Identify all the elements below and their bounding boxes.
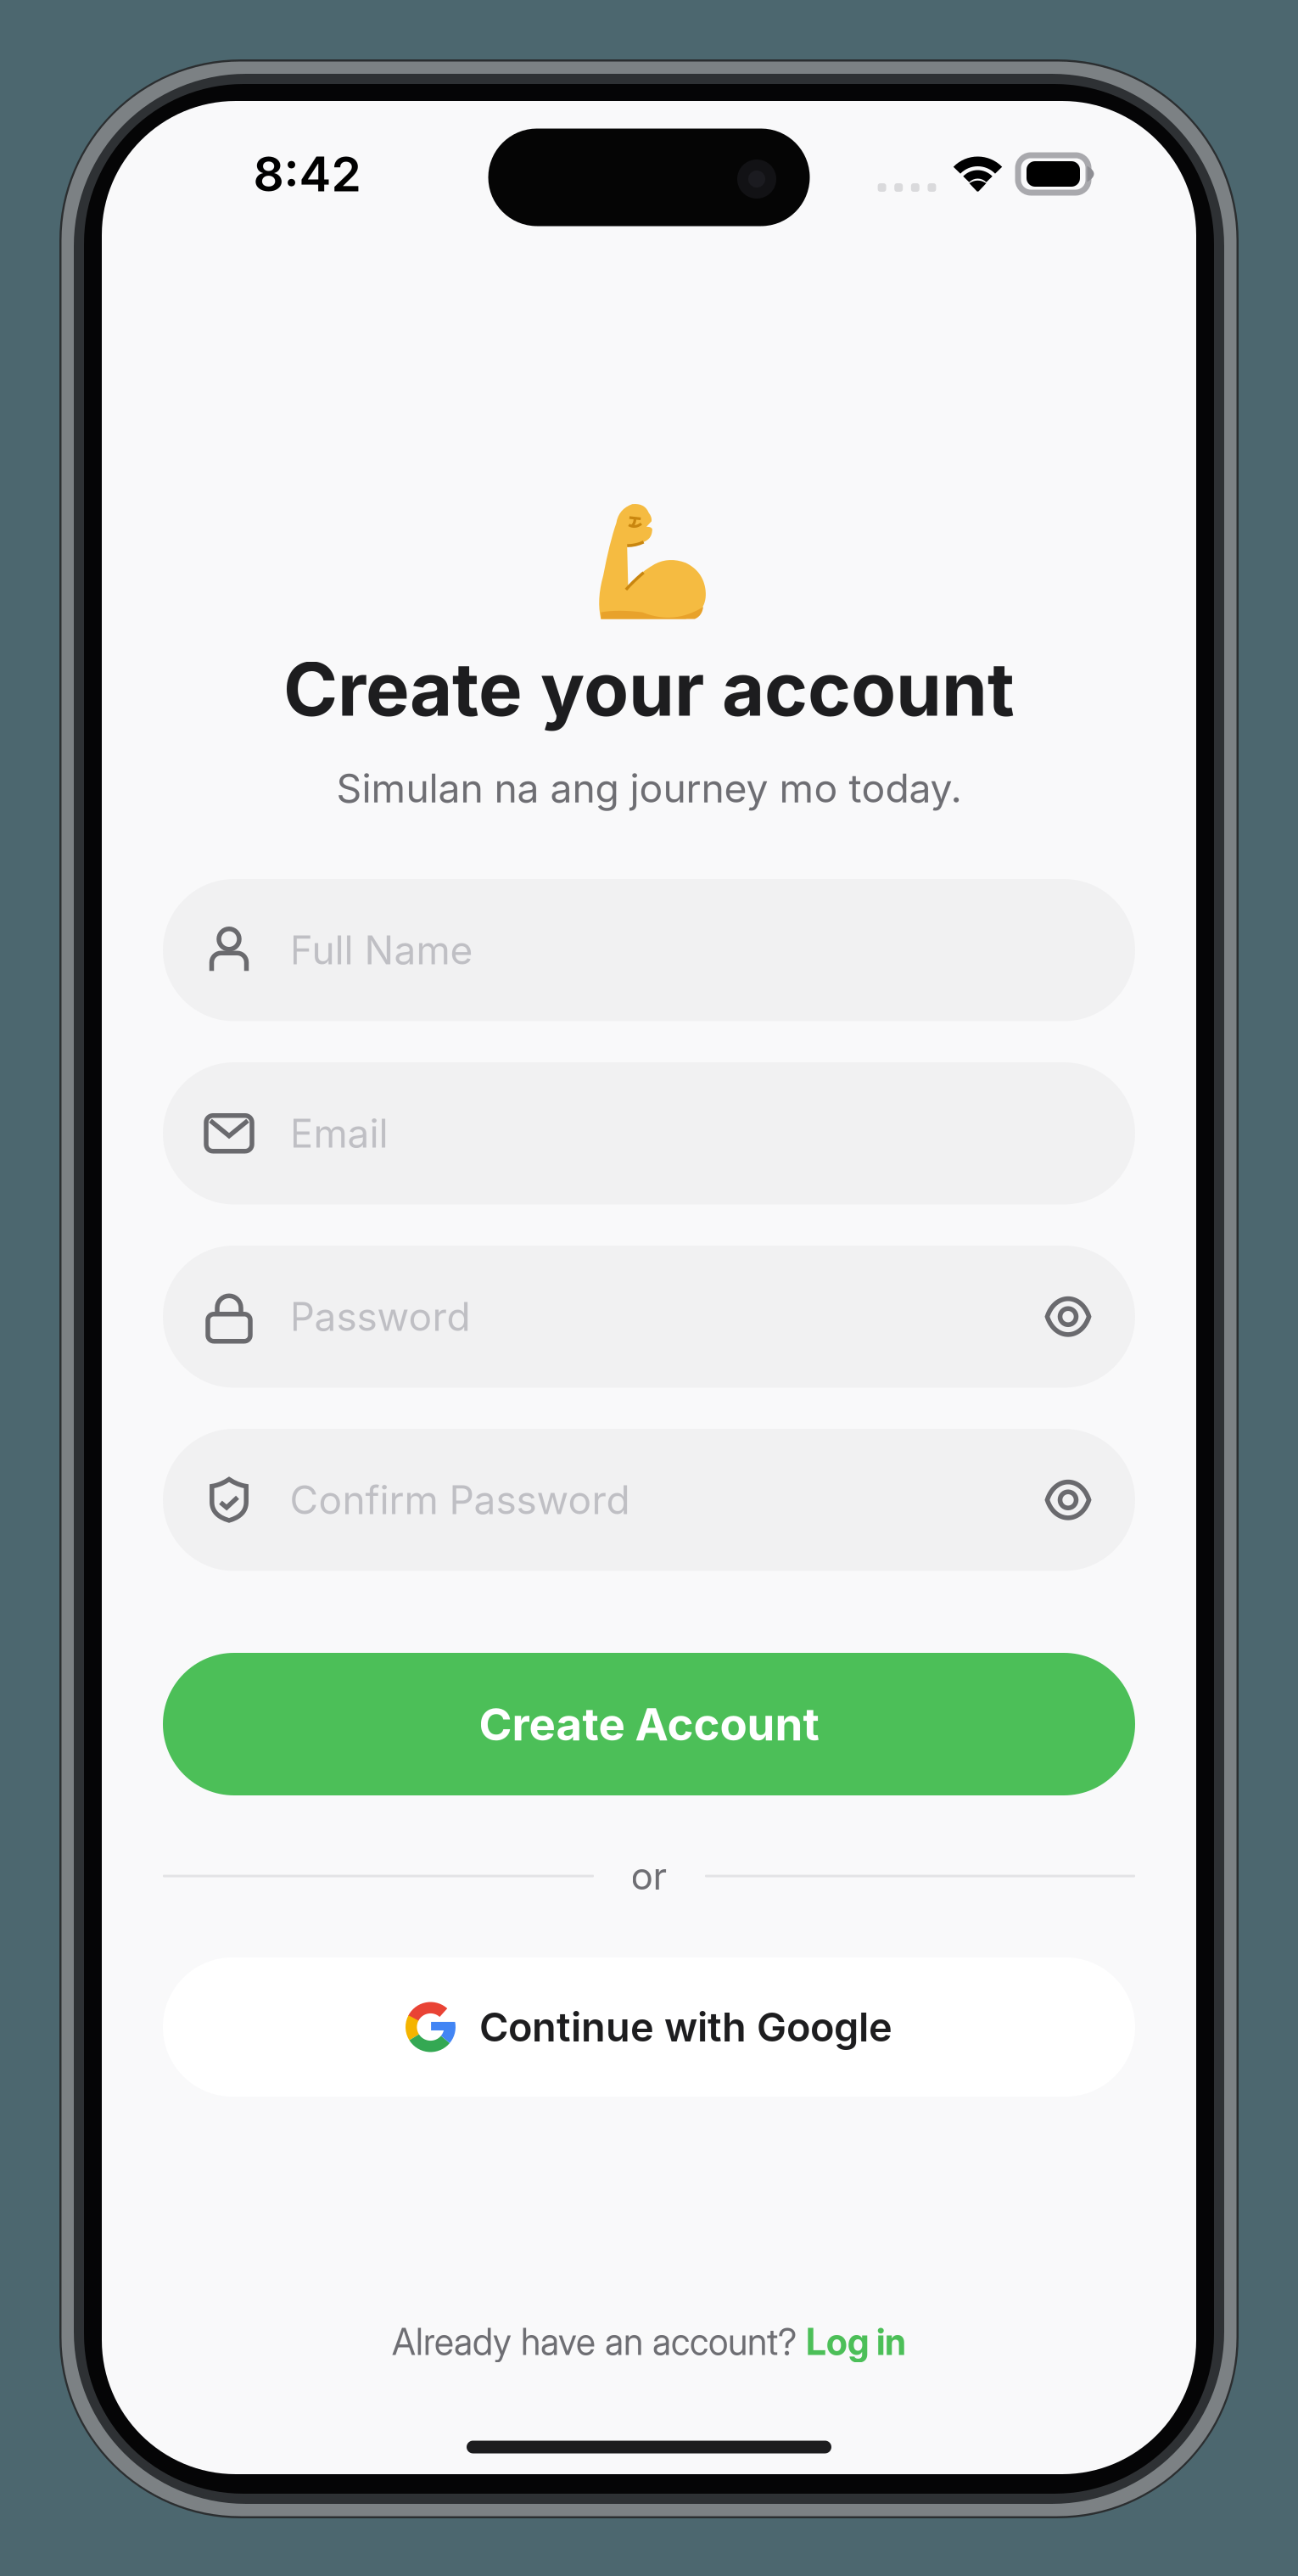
staticText: Create Account	[479, 1697, 819, 1751]
staticText: Already have an account?	[392, 2320, 806, 2364]
button[interactable]: Confirm Password	[163, 1429, 1135, 1571]
staticText: Full Name	[290, 926, 473, 974]
button[interactable]: Continue with Google	[163, 1957, 1135, 2097]
staticText: 8:42	[253, 145, 361, 203]
staticText: Confirm Password	[290, 1476, 630, 1524]
staticText: Create your account	[283, 645, 1015, 734]
staticText: Password	[290, 1293, 470, 1340]
button[interactable]: Create Account	[163, 1653, 1135, 1795]
staticText: or	[631, 1853, 667, 1899]
button[interactable]: Full Name	[163, 879, 1135, 1021]
button[interactable]: Already have an account?	[392, 2320, 906, 2364]
staticText: Continue with Google	[479, 2003, 892, 2051]
button[interactable]: Password	[163, 1246, 1135, 1388]
staticText: Simulan na ang journey mo today.	[336, 764, 962, 812]
staticText: Log in	[806, 2320, 906, 2364]
staticText: Email	[290, 1110, 388, 1157]
button[interactable]: Email	[163, 1062, 1135, 1204]
